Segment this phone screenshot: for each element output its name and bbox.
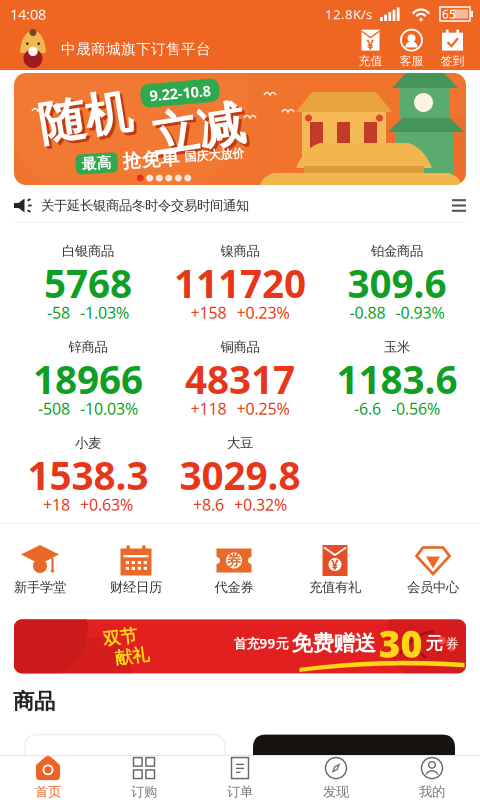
staticText: +0.63%: [80, 494, 133, 515]
staticText: 充值: [358, 54, 382, 68]
staticText: +8.6: [193, 494, 224, 515]
staticText: 12.8K/s: [325, 5, 372, 23]
staticText: 白银商品: [62, 243, 114, 259]
button[interactable]: ¥: [350, 30, 391, 68]
staticText: 充值有礼: [309, 579, 361, 595]
staticText: +0.23%: [236, 302, 289, 323]
button[interactable]: 首充优惠: [14, 619, 466, 673]
button[interactable]: 白银商品: [8, 229, 168, 325]
staticText: 国庆大放价: [184, 152, 244, 166]
button[interactable]: 签到: [432, 30, 473, 68]
staticText: 券: [445, 635, 458, 652]
button[interactable]: 公告: [0, 189, 480, 222]
staticText: 65: [442, 6, 456, 22]
staticText: 中晟商城旗下订售平台: [61, 40, 211, 58]
staticText: 首充99元: [233, 634, 288, 652]
staticText: 14:08: [10, 4, 46, 24]
staticText: ¥: [366, 36, 374, 53]
button[interactable]: 铂金商品: [317, 229, 477, 325]
staticText: -508: [38, 398, 70, 419]
staticText: 5768: [44, 257, 132, 309]
button[interactable]: 订单: [192, 756, 288, 800]
button[interactable]: 商品一: [25, 735, 225, 779]
staticText: 财经日历: [110, 579, 162, 595]
staticText: 铂金商品: [371, 243, 423, 259]
button[interactable]: 财经日历: [88, 537, 184, 595]
button[interactable]: 会员中心: [385, 537, 480, 595]
staticText: 小麦: [75, 435, 101, 451]
staticText: -0.88: [349, 302, 385, 323]
staticText: 客服: [399, 54, 423, 68]
staticText: 48317: [185, 353, 295, 405]
button[interactable]: ¥: [287, 537, 383, 595]
button[interactable]: 锌商品: [8, 325, 168, 421]
button[interactable]: 玉米: [317, 325, 477, 421]
staticText: 随机: [38, 89, 132, 147]
staticText: 玉米: [384, 339, 410, 355]
staticText: 签到: [440, 54, 464, 68]
staticText: 首页: [35, 784, 61, 800]
staticText: 1538.3: [27, 449, 148, 501]
button[interactable]: 客服: [391, 30, 432, 68]
button[interactable]: 我的: [384, 756, 480, 800]
button[interactable]: 发现: [288, 756, 384, 800]
staticText: -1.03%: [80, 302, 129, 323]
staticText: 大豆: [227, 435, 253, 451]
button[interactable]: 镍商品: [160, 229, 320, 325]
staticText: 订单: [227, 784, 253, 800]
staticText: 18966: [33, 353, 143, 405]
button[interactable]: 订购: [96, 756, 192, 800]
staticText: -58: [47, 302, 70, 323]
staticText: +18: [43, 494, 70, 515]
button[interactable]: 商品二: [253, 735, 455, 779]
staticText: 订购: [131, 784, 157, 800]
button[interactable]: 新手学堂: [0, 537, 88, 595]
staticText: 立减: [153, 104, 247, 162]
button[interactable]: 活动横幅: [14, 73, 466, 185]
staticText: 309.6: [347, 257, 446, 309]
staticText: 9.22-10.8: [149, 83, 210, 103]
staticText: -0.56%: [391, 398, 440, 419]
staticText: +0.32%: [234, 494, 287, 515]
staticText: 新手学堂: [14, 579, 66, 595]
button[interactable]: 券: [186, 537, 282, 595]
staticText: ¥: [331, 556, 339, 573]
staticText: 会员中心: [407, 579, 459, 595]
staticText: 元: [425, 633, 442, 654]
staticText: +118: [190, 398, 226, 419]
staticText: 30: [378, 619, 422, 668]
staticText: 献礼: [115, 646, 149, 667]
staticText: -0.93%: [395, 302, 444, 323]
staticText: 券: [226, 551, 241, 569]
staticText: +158: [190, 302, 226, 323]
staticText: 铜商品: [220, 339, 259, 355]
staticText: 111720: [174, 257, 306, 309]
staticText: 锌商品: [68, 339, 107, 355]
staticText: 关于延长银商品冬时令交易时间通知: [41, 197, 249, 214]
button[interactable]: 大豆: [160, 421, 320, 517]
staticText: 3029.8: [179, 449, 300, 501]
staticText: 商品: [13, 688, 55, 715]
staticText: 抢免单: [122, 147, 179, 170]
button[interactable]: 铜商品: [160, 325, 320, 421]
staticText: 我的: [419, 784, 445, 800]
staticText: 代金券: [214, 579, 253, 595]
staticText: 镍商品: [220, 243, 259, 259]
staticText: 最高: [81, 150, 111, 168]
staticText: -10.03%: [80, 398, 138, 419]
staticText: -6.6: [354, 398, 381, 419]
staticText: +0.25%: [236, 398, 289, 419]
staticText: 双节: [103, 627, 137, 648]
button[interactable]: 首页: [0, 756, 96, 800]
staticText: 随机: [40, 92, 134, 150]
staticText: 立减: [151, 101, 245, 159]
staticText: 1183.6: [336, 353, 457, 405]
staticText: 发现: [323, 784, 349, 800]
button[interactable]: 小麦: [8, 421, 168, 517]
staticText: 免费赠送: [291, 630, 375, 656]
